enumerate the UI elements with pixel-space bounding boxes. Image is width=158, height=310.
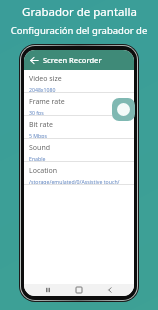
- button[interactable]: Back: [24, 50, 134, 70]
- staticText: /storage/emulated/0/Assistive touch/: [29, 178, 120, 184]
- button[interactable]: Back: [28, 54, 40, 66]
- staticText: 2048x1080: [29, 86, 56, 92]
- button[interactable]: Location: [24, 162, 134, 185]
- staticText: Video size: [29, 74, 62, 84]
- staticText: Sound: [29, 143, 51, 153]
- button[interactable]: Frame rate: [24, 93, 134, 116]
- staticText: Grabador de pantalla: [22, 4, 137, 20]
- staticText: Location: [29, 166, 58, 176]
- staticText: Enable: [29, 155, 46, 161]
- button[interactable]: Back: [103, 284, 117, 296]
- button[interactable]: Sound: [24, 139, 134, 162]
- staticText: Bit rate: [29, 120, 53, 130]
- button[interactable]: Bit rate: [24, 116, 134, 139]
- button[interactable]: Home: [72, 284, 86, 296]
- staticText: Frame rate: [29, 97, 65, 107]
- staticText: 30 fps: [29, 109, 44, 115]
- button[interactable]: Assistive touch: [112, 98, 135, 121]
- staticText: Configuración del grabador de pantalla: [0, 24, 158, 37]
- staticText: Screen Recorder: [43, 55, 102, 65]
- button[interactable]: Video size: [24, 70, 134, 93]
- staticText: 5 Mbps: [29, 132, 47, 138]
- button[interactable]: Recents: [41, 284, 55, 296]
